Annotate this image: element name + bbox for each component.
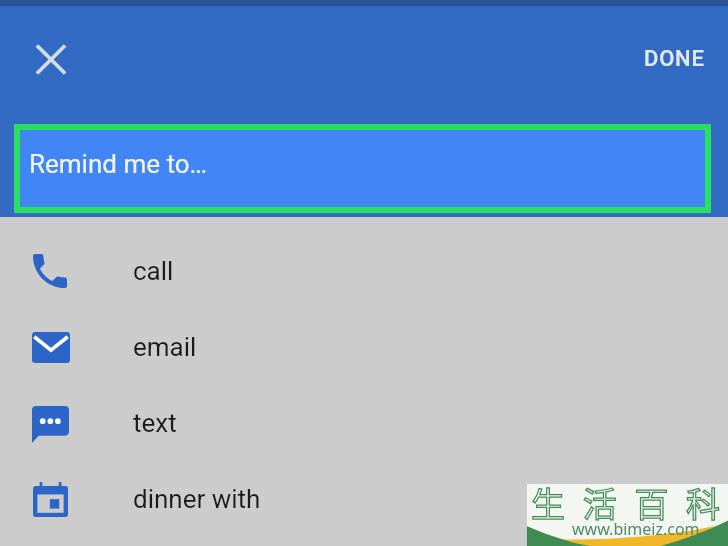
- button[interactable]: text: [0, 385, 728, 461]
- staticText: 生活百科: [531, 478, 728, 527]
- button[interactable]: call: [0, 233, 728, 309]
- button[interactable]: DONE: [628, 36, 721, 82]
- staticText: call: [133, 256, 174, 286]
- staticText: email: [133, 332, 197, 362]
- staticText: Remind me to…: [29, 149, 207, 179]
- button[interactable]: email: [0, 309, 728, 385]
- button[interactable]: Remind me to…: [20, 130, 705, 207]
- button[interactable]: Close: [22, 31, 78, 87]
- staticText: DONE: [644, 46, 705, 72]
- button[interactable]: dinner with: [0, 461, 728, 537]
- staticText: www.bimeiz.com: [572, 518, 700, 540]
- staticText: text: [133, 408, 177, 438]
- staticText: dinner with: [133, 484, 261, 514]
